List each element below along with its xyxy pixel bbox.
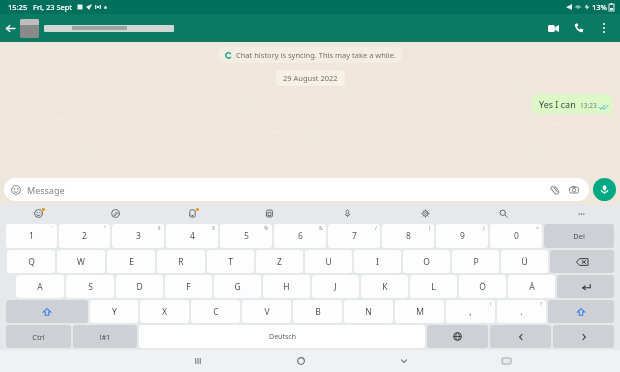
button[interactable]: enter — [557, 275, 614, 298]
button[interactable]: 9 — [436, 224, 488, 248]
button[interactable]: prev — [490, 325, 551, 348]
button[interactable]: backspace — [550, 250, 614, 273]
button[interactable]: B — [293, 300, 342, 323]
button[interactable]: C — [191, 300, 240, 323]
button[interactable]: More options — [592, 16, 616, 40]
button[interactable]: Voice message — [593, 178, 616, 201]
button[interactable]: shift — [6, 300, 88, 323]
button[interactable]: Keyboard layout — [455, 350, 558, 372]
button[interactable]: Del — [544, 224, 614, 248]
staticText: Ü — [521, 256, 528, 268]
button[interactable]: D — [116, 275, 163, 298]
staticText: Yes I can — [539, 98, 576, 110]
button[interactable]: globe — [427, 325, 488, 348]
staticText: / — [375, 225, 377, 232]
button[interactable]: !#1 — [73, 325, 137, 348]
staticText: Ctrl — [32, 332, 45, 342]
button[interactable]: M — [395, 300, 444, 323]
button[interactable]: Handwriting — [77, 204, 154, 222]
staticText: F — [186, 281, 191, 293]
staticText: Q — [28, 256, 35, 268]
button[interactable]: Camera — [566, 182, 582, 198]
staticText: A — [37, 281, 43, 293]
button[interactable]: 3 — [112, 224, 164, 248]
button[interactable]: I — [354, 250, 401, 273]
button[interactable]: Clipboard — [231, 204, 308, 222]
button[interactable]: P — [452, 250, 499, 273]
button[interactable]: K — [361, 275, 408, 298]
button[interactable]: Voice input — [308, 204, 386, 222]
staticText: Ä — [529, 281, 535, 293]
button[interactable]: Attach — [547, 182, 563, 198]
button[interactable]: Search — [464, 204, 542, 222]
button[interactable]: Q — [7, 250, 55, 273]
button[interactable]: Voice call — [566, 15, 592, 41]
button[interactable]: More — [542, 204, 620, 222]
button[interactable]: shift — [548, 300, 614, 323]
staticText: Message — [27, 184, 65, 196]
button[interactable]: 4 — [166, 224, 218, 248]
staticText: M — [416, 306, 424, 318]
button[interactable]: O — [403, 250, 450, 273]
staticText: H — [283, 281, 290, 293]
button[interactable] — [44, 25, 540, 32]
button[interactable]: Emoji — [0, 204, 77, 222]
button[interactable]: Deutsch — [139, 325, 425, 348]
button[interactable]: J — [312, 275, 359, 298]
button[interactable]: 1 — [6, 224, 57, 248]
button[interactable]: Ä — [508, 275, 555, 298]
staticText: L — [431, 281, 436, 293]
staticText: 9 — [460, 230, 465, 242]
button[interactable]: Ctrl — [6, 325, 71, 348]
button[interactable]: Ö — [459, 275, 506, 298]
staticText: X — [162, 306, 167, 318]
staticText: 3 — [136, 230, 141, 242]
staticText: % — [264, 225, 269, 232]
button[interactable]: Settings — [386, 204, 464, 222]
button[interactable]: 5 — [220, 224, 272, 248]
button[interactable]: N — [344, 300, 393, 323]
staticText: , — [469, 306, 472, 318]
staticText: !#1 — [99, 332, 111, 342]
button[interactable]: 0 — [490, 224, 542, 248]
button[interactable]: E — [107, 250, 155, 273]
button[interactable]: Video call — [540, 15, 566, 41]
staticText: S — [88, 281, 93, 293]
button[interactable]: R — [157, 250, 205, 273]
button[interactable]: L — [410, 275, 457, 298]
staticText: P — [473, 256, 479, 268]
button[interactable]: Y — [90, 300, 138, 323]
button[interactable]: V — [242, 300, 291, 323]
staticText: 8 — [406, 230, 411, 242]
button[interactable]: 8 — [382, 224, 434, 248]
staticText: ? — [540, 301, 543, 308]
button[interactable]: 7 — [328, 224, 380, 248]
staticText: 6 — [298, 230, 303, 242]
button[interactable]: Message — [4, 178, 589, 201]
button[interactable]: 2 — [59, 224, 110, 248]
button[interactable]: H — [263, 275, 310, 298]
button[interactable]: F — [165, 275, 212, 298]
button[interactable]: next — [553, 325, 614, 348]
button[interactable]: U — [305, 250, 352, 273]
button[interactable]: Hide keyboard — [352, 350, 455, 372]
staticText: 2 — [82, 230, 87, 242]
button[interactable]: X — [140, 300, 189, 323]
button[interactable]: Recent apps — [146, 350, 249, 372]
button[interactable]: A — [16, 275, 64, 298]
button[interactable]: Ü — [501, 250, 548, 273]
button[interactable]: Stickers — [154, 204, 231, 222]
button[interactable]: 6 — [274, 224, 326, 248]
staticText: K — [382, 281, 388, 293]
button[interactable]: Z — [256, 250, 303, 273]
button[interactable]: Home — [249, 350, 352, 372]
button[interactable]: Back — [0, 18, 20, 38]
button[interactable]: . — [497, 300, 546, 323]
button[interactable]: Yes I can — [532, 94, 612, 114]
button[interactable]: W — [57, 250, 105, 273]
button[interactable]: , — [446, 300, 495, 323]
button[interactable]: T — [207, 250, 254, 273]
button[interactable]: G — [214, 275, 261, 298]
button[interactable]: S — [66, 275, 114, 298]
staticText: N — [365, 306, 372, 318]
